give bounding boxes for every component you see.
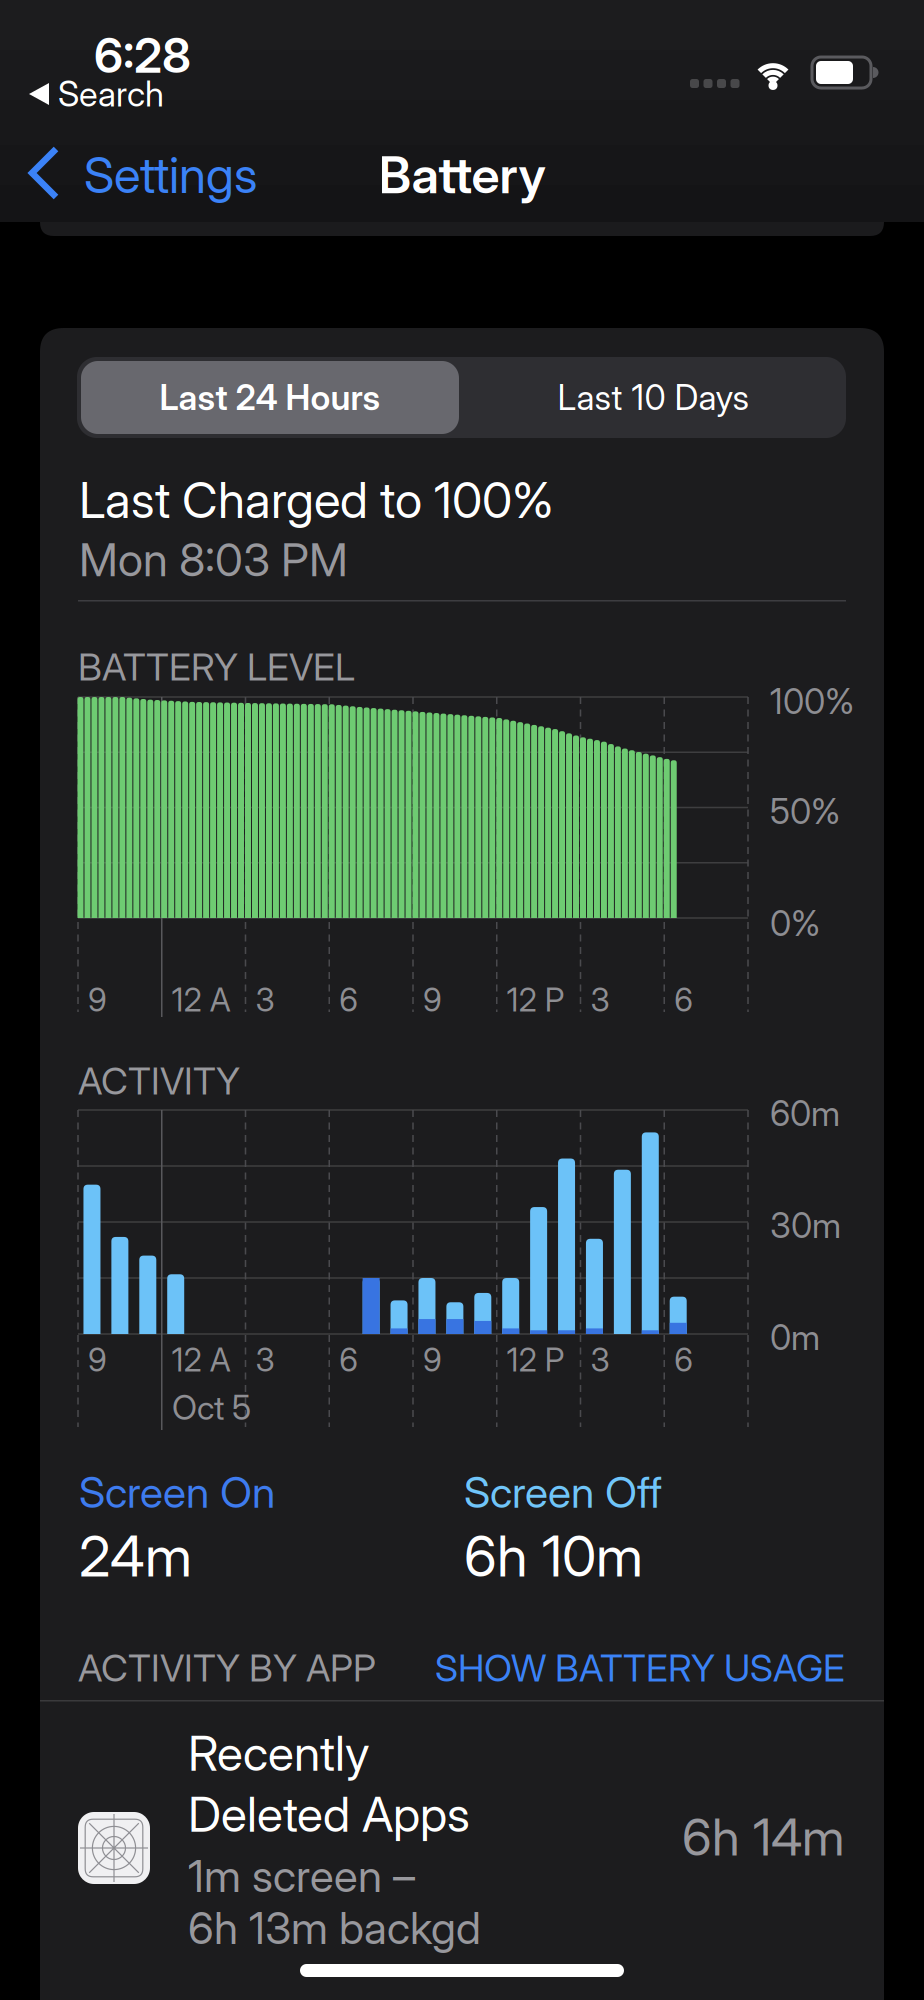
staticText: 3 [255,1341,274,1379]
staticText: 6:28 [94,27,191,84]
staticText: 9 [88,1341,107,1379]
staticText: ACTIVITY [78,1059,240,1103]
staticText: 0% [770,903,820,944]
button[interactable]: SHOW BATTERY USAGE [325,1647,845,1689]
button[interactable]: Last 10 Days [460,357,846,438]
staticText: 6h 10m [464,1523,643,1589]
staticText: 6 [339,981,358,1019]
staticText: 3 [255,981,274,1019]
staticText: 100% [770,681,854,722]
staticText: Last 24 Hours [159,377,380,418]
staticText: BATTERY LEVEL [78,645,355,689]
staticText: 12 P [507,981,565,1019]
staticText: 6 [674,1341,693,1379]
staticText: Settings [84,146,257,204]
staticText: 6 [674,981,693,1019]
staticText: Search [58,74,164,114]
button[interactable]: Last 24 Hours [81,361,459,434]
button[interactable]: Settings [28,145,278,205]
staticText: Oct 5 [172,1388,251,1427]
button[interactable]: Search [29,76,164,112]
staticText: SHOW BATTERY USAGE [435,1646,845,1690]
staticText: 3 [590,981,609,1019]
staticText: 12 P [507,1341,565,1379]
staticText: 12 A [172,1341,231,1379]
staticText: 24m [79,1523,192,1589]
staticText: 9 [423,981,442,1019]
staticText: Deleted Apps [188,1786,470,1843]
staticText: Battery [378,145,545,205]
staticText: 30m [770,1205,841,1246]
staticText: 50% [770,791,840,832]
staticText: 6 [339,1341,358,1379]
staticText: Mon 8:03 PM [79,533,348,586]
staticText: 6h 14m [682,1807,845,1867]
staticText: 6h 13m backgd [188,1902,481,1954]
staticText: ACTIVITY BY APP [78,1646,376,1690]
staticText: Screen Off [464,1467,662,1517]
staticText: Last 10 Days [557,377,748,418]
staticText: 60m [770,1093,840,1134]
staticText: Recently [188,1725,370,1782]
staticText: 0m [770,1317,820,1358]
staticText: 12 A [172,981,231,1019]
staticText: 3 [590,1341,609,1379]
staticText: 9 [423,1341,442,1379]
staticText: Screen On [79,1467,275,1517]
staticText: 9 [88,981,107,1019]
button[interactable]: Recently [40,1700,884,2000]
staticText: 1m screen – [188,1850,415,1902]
staticText: Last Charged to 100% [79,471,554,529]
